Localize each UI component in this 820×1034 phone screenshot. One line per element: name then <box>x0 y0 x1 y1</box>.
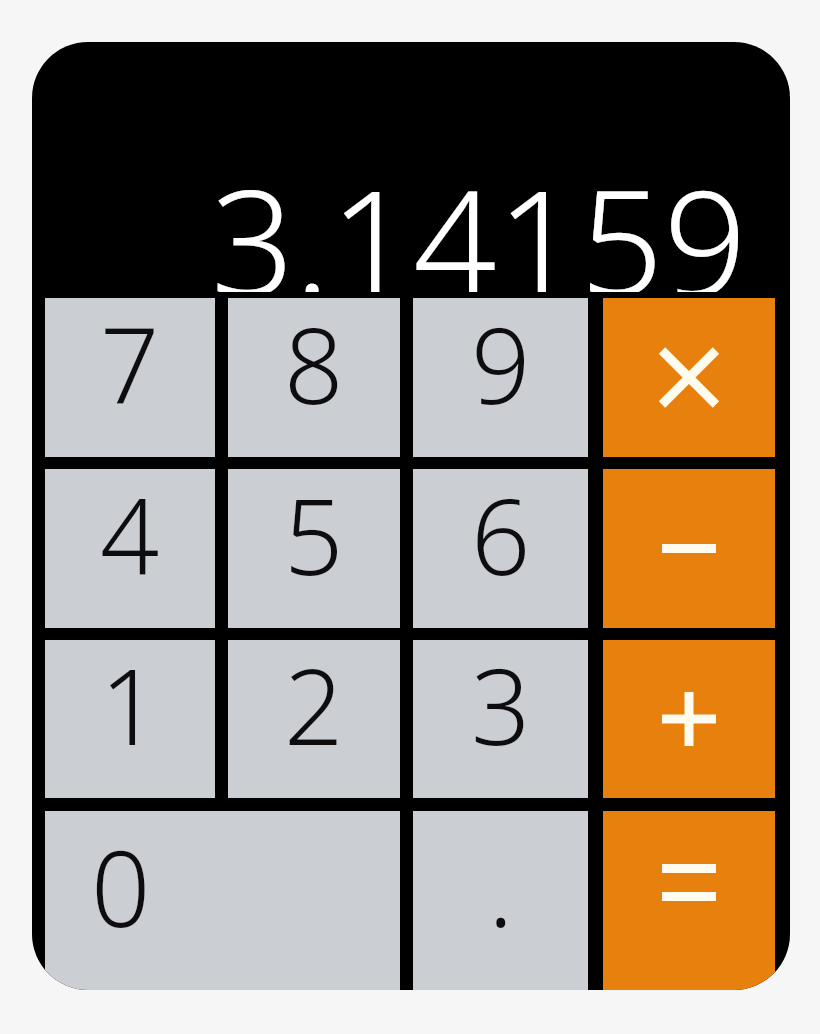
staticText: 0 <box>91 816 151 958</box>
button[interactable]: Minus <box>603 469 775 628</box>
button[interactable]: Multiply <box>603 298 775 457</box>
button[interactable]: 1 <box>45 640 215 798</box>
staticText: 6 <box>471 464 531 606</box>
button[interactable]: Plus <box>603 640 775 798</box>
button[interactable]: 6 <box>413 469 588 628</box>
staticText: 4 <box>100 464 160 606</box>
button[interactable]: 2 <box>228 640 400 798</box>
staticText: 1 <box>100 634 160 776</box>
button[interactable]: 9 <box>413 298 588 457</box>
staticText: 8 <box>284 293 344 435</box>
staticText: 3 <box>471 634 531 776</box>
staticText: . <box>488 816 514 958</box>
button[interactable]: . <box>413 811 588 990</box>
staticText: 2 <box>284 634 344 776</box>
staticText: 9 <box>471 293 531 435</box>
staticText: 3.14159 <box>211 140 747 292</box>
button[interactable]: Equals <box>603 811 775 990</box>
button[interactable]: 3 <box>413 640 588 798</box>
button[interactable]: 0 <box>45 811 400 990</box>
button[interactable]: 7 <box>45 298 215 457</box>
button[interactable]: 8 <box>228 298 400 457</box>
staticText: 5 <box>284 464 344 606</box>
button[interactable]: 5 <box>228 469 400 628</box>
staticText: 7 <box>100 293 160 435</box>
button[interactable]: 4 <box>45 469 215 628</box>
